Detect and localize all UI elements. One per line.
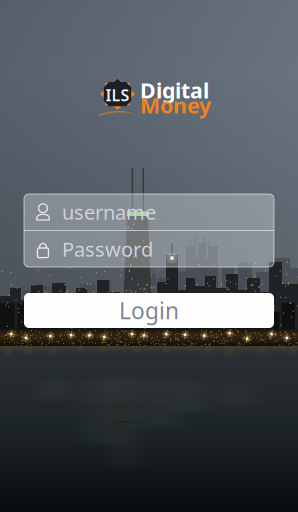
staticText: ILS [105, 84, 129, 106]
staticText: Digital [140, 76, 209, 104]
staticText: username [62, 199, 156, 225]
staticText: Money [140, 91, 211, 119]
staticText: Password [62, 236, 153, 262]
staticText: Login [119, 295, 179, 325]
button[interactable]: username [24, 194, 274, 230]
button[interactable]: Password [24, 231, 274, 267]
button[interactable]: Login [24, 293, 274, 328]
